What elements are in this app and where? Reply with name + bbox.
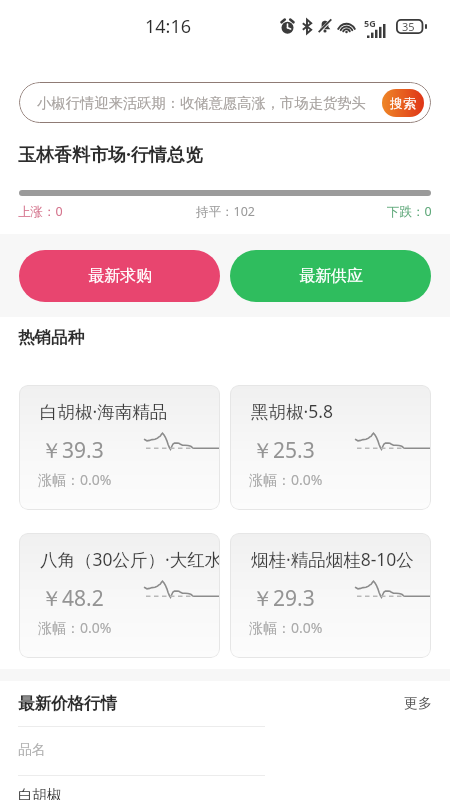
staticText: 涨幅：0.0%: [38, 470, 112, 489]
staticText: ￥48.2: [41, 584, 104, 613]
staticText: ￥39.3: [41, 436, 104, 465]
staticText: ￥29.3: [252, 584, 315, 613]
button[interactable]: 小椒行情迎来活跃期：收储意愿高涨，市场走货势头: [19, 82, 431, 123]
button[interactable]: 更多: [400, 689, 436, 719]
staticText: 涨幅：0.0%: [38, 618, 112, 637]
button[interactable]: 白胡椒·海南精品: [19, 385, 220, 510]
staticText: 14:16: [145, 14, 192, 39]
staticText: 5G: [364, 17, 376, 29]
staticText: 玉林香料市场·行情总览: [18, 142, 204, 167]
staticText: 最新价格行情: [18, 693, 117, 714]
staticText: 更多: [404, 695, 432, 713]
staticText: ￥25.3: [252, 436, 315, 465]
staticText: 涨幅：0.0%: [249, 470, 323, 489]
staticText: 白胡椒·海南精品: [40, 399, 168, 423]
staticText: 小椒行情迎来活跃期：收储意愿高涨，市场走货势头: [37, 94, 378, 112]
staticText: 搜索: [390, 95, 416, 111]
staticText: 烟桂·精品烟桂8-10公: [251, 547, 414, 571]
staticText: 白胡椒: [18, 786, 62, 800]
staticText: 品名: [18, 741, 45, 758]
button[interactable]: 最新供应: [230, 250, 431, 302]
staticText: 35: [402, 19, 415, 34]
staticText: 最新供应: [299, 266, 363, 286]
staticText: 最新求购: [88, 266, 152, 286]
button[interactable]: 八角（30公斤）·大红水: [19, 533, 220, 658]
staticText: 下跌：0: [387, 203, 432, 220]
staticText: 黑胡椒·5.8: [251, 399, 333, 423]
staticText: 上涨：0: [18, 203, 63, 220]
button[interactable]: 搜索: [382, 89, 424, 117]
staticText: 涨幅：0.0%: [249, 618, 323, 637]
staticText: 八角（30公斤）·大红水: [40, 547, 220, 571]
button[interactable]: 烟桂·精品烟桂8-10公: [230, 533, 431, 658]
button[interactable]: 最新求购: [19, 250, 220, 302]
staticText: 热销品种: [18, 327, 84, 348]
staticText: 持平：102: [196, 203, 255, 220]
button[interactable]: 黑胡椒·5.8: [230, 385, 431, 510]
